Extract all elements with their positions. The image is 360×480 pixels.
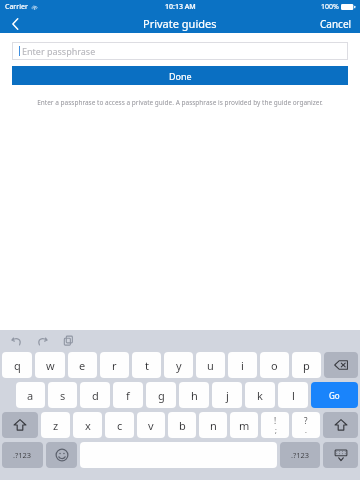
staticText: .?123 <box>13 450 32 460</box>
staticText: Carrier <box>5 2 28 12</box>
button[interactable]: n <box>199 412 227 438</box>
button[interactable]: Enter passphrase <box>12 42 348 60</box>
button[interactable]: g <box>146 382 176 408</box>
staticText: 100% <box>321 2 339 12</box>
button[interactable]: e <box>68 352 97 378</box>
staticText: l <box>292 388 295 403</box>
button[interactable]: m <box>230 412 258 438</box>
staticText: a <box>27 388 34 403</box>
staticText: n <box>210 418 217 433</box>
button[interactable]: c <box>105 412 134 438</box>
button[interactable]: l <box>278 382 308 408</box>
staticText: o <box>271 358 278 373</box>
staticText: Cancel <box>320 17 352 31</box>
staticText: Private guides <box>143 16 217 31</box>
staticText: f <box>126 388 130 403</box>
staticText: m <box>239 418 250 433</box>
button[interactable]: r <box>100 352 129 378</box>
staticText: .?123 <box>291 450 310 460</box>
staticText: Enter passphrase <box>22 45 96 57</box>
button[interactable]: b <box>168 412 196 438</box>
button[interactable]: z <box>41 412 70 438</box>
staticText: . <box>305 426 307 436</box>
button[interactable]: .?123 <box>2 442 43 468</box>
button[interactable]: a <box>16 382 45 408</box>
staticText: t <box>145 358 149 373</box>
staticText: z <box>53 418 59 433</box>
staticText: 10:13 AM <box>165 2 196 12</box>
staticText: b <box>179 418 186 433</box>
button[interactable]: i <box>228 352 257 378</box>
button[interactable]: y <box>164 352 193 378</box>
button[interactable]: Copy <box>60 332 76 348</box>
staticText: h <box>191 388 198 403</box>
staticText: s <box>60 388 66 403</box>
staticText: d <box>92 388 99 403</box>
button[interactable]: o <box>260 352 289 378</box>
button[interactable]: Go <box>311 382 358 408</box>
button[interactable]: q <box>2 352 32 378</box>
button[interactable]: Cancel <box>312 14 360 33</box>
staticText: Enter a passphrase to access a private g… <box>30 98 330 107</box>
staticText: c <box>117 418 123 433</box>
staticText: u <box>207 358 214 373</box>
staticText: g <box>158 388 165 403</box>
button[interactable]: h <box>179 382 209 408</box>
button[interactable]: x <box>73 412 102 438</box>
staticText: i <box>241 358 244 373</box>
staticText: Go <box>329 390 340 401</box>
button[interactable]: Shift <box>2 412 38 438</box>
staticText: k <box>257 388 263 403</box>
button[interactable]: Emoji <box>46 442 77 468</box>
staticText: j <box>226 388 229 403</box>
staticText: y <box>176 358 182 373</box>
staticText: ? <box>304 415 308 426</box>
button[interactable]: u <box>196 352 225 378</box>
button[interactable]: f <box>113 382 143 408</box>
button[interactable]: Back <box>0 14 30 33</box>
button[interactable]: s <box>48 382 77 408</box>
button[interactable]: Backspace <box>324 352 358 378</box>
button[interactable]: Done <box>12 66 348 85</box>
button[interactable]: ! <box>261 412 289 438</box>
button[interactable]: .?123 <box>280 442 320 468</box>
button[interactable]: k <box>245 382 275 408</box>
staticText: ; <box>275 426 277 436</box>
staticText: p <box>303 358 310 373</box>
button[interactable]: w <box>35 352 65 378</box>
staticText: q <box>14 358 21 373</box>
staticText: x <box>85 418 91 433</box>
staticText: Done <box>169 70 192 82</box>
button[interactable]: p <box>292 352 321 378</box>
button[interactable]: Undo <box>8 332 24 348</box>
button[interactable]: Hide keyboard <box>323 442 358 468</box>
button[interactable]: j <box>212 382 242 408</box>
button[interactable]: Redo <box>34 332 50 348</box>
staticText: w <box>46 358 55 373</box>
staticText: r <box>112 358 117 373</box>
button[interactable]: d <box>80 382 110 408</box>
button[interactable]: v <box>137 412 165 438</box>
button[interactable]: ? <box>292 412 320 438</box>
button[interactable]: t <box>132 352 161 378</box>
staticText: e <box>79 358 86 373</box>
staticText: ! <box>274 415 277 426</box>
button[interactable]: Shift <box>323 412 358 438</box>
staticText: v <box>148 418 154 433</box>
